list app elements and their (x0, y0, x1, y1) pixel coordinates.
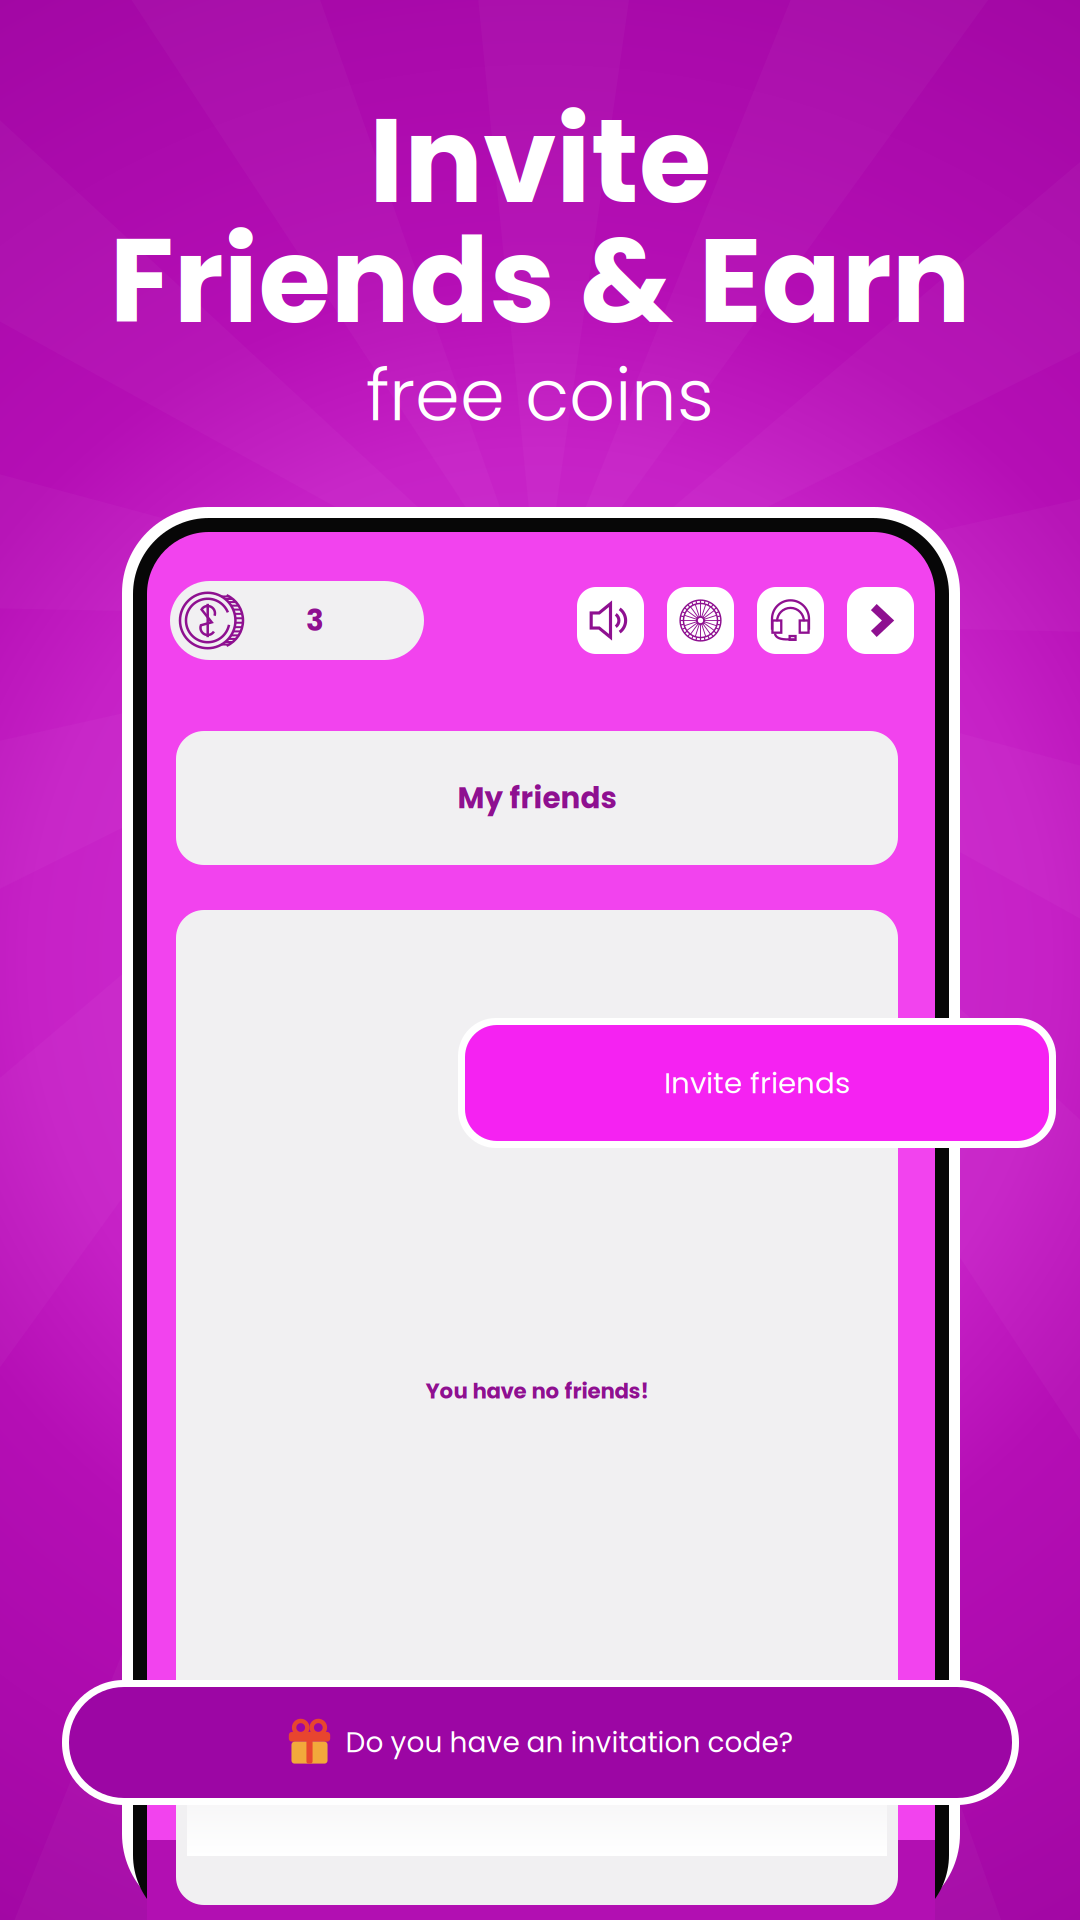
staticText: Invite (369, 79, 711, 243)
button[interactable]: Sound (577, 587, 644, 654)
button[interactable]: Do you have an invitation code? (62, 1680, 1019, 1805)
button[interactable]: Lucky wheel (667, 587, 734, 654)
button[interactable]: 3 (170, 581, 424, 660)
staticText: Invite friends (664, 1062, 850, 1104)
button[interactable]: My friends (176, 731, 898, 865)
staticText: 3 (306, 600, 324, 641)
staticText: You have no friends! (425, 1376, 648, 1406)
button[interactable]: Support (757, 587, 824, 654)
staticText: Do you have an invitation code? (345, 1723, 793, 1762)
staticText: My friends (457, 777, 616, 819)
button[interactable]: Next (847, 587, 914, 654)
button[interactable]: Invite friends (458, 1018, 1056, 1148)
staticText: Friends & Earn (109, 199, 970, 363)
staticText: free coins (366, 345, 714, 445)
